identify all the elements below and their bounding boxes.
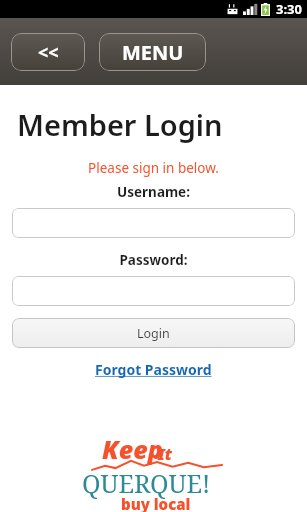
staticText: buy local bbox=[121, 494, 191, 512]
staticText: Please sign in below. bbox=[0, 159, 307, 177]
button[interactable]: Login bbox=[12, 318, 295, 348]
staticText: << bbox=[38, 40, 59, 65]
button[interactable] bbox=[12, 276, 295, 306]
button[interactable]: Forgot Password bbox=[91, 358, 216, 381]
staticText: MENU bbox=[122, 39, 184, 66]
staticText: QUERQUE! bbox=[82, 466, 211, 500]
button[interactable] bbox=[12, 208, 295, 238]
staticText: Username: bbox=[0, 183, 307, 201]
staticText: It bbox=[158, 443, 173, 465]
button[interactable]: Back bbox=[11, 33, 85, 71]
button[interactable]: MENU bbox=[99, 33, 206, 71]
staticText: Keep bbox=[102, 432, 163, 466]
staticText: Forgot Password bbox=[95, 360, 212, 379]
staticText: 3:30 bbox=[276, 0, 302, 18]
staticText: Member Login bbox=[17, 105, 223, 144]
staticText: Password: bbox=[0, 251, 307, 269]
staticText: Login bbox=[137, 325, 170, 342]
